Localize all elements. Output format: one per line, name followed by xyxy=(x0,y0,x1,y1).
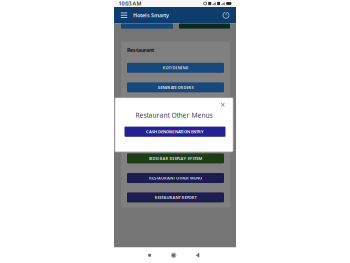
staticText: Restaurant Other Menus xyxy=(135,111,212,120)
button[interactable]: Back xyxy=(186,250,210,260)
staticText: (BDS) BAR DISPLAY SYSTEM xyxy=(148,156,202,161)
button[interactable]: ROOM SERVICE xyxy=(127,102,224,112)
staticText: CASH DENOMINATION ENTRY xyxy=(146,129,204,134)
staticText: 10:03 AM xyxy=(118,0,141,7)
button[interactable]: Open navigation menu xyxy=(117,8,131,22)
staticText: Restaurant xyxy=(127,46,154,54)
staticText: Hotels Smarty xyxy=(133,12,169,19)
button[interactable]: RESTAURANT OTHER MENU xyxy=(127,173,224,183)
staticText: RESTAURANT REPORT xyxy=(154,195,196,200)
button[interactable]: TABLE RESERVATION xyxy=(127,122,224,132)
staticText: GENERATE ORDERS xyxy=(157,85,193,90)
button[interactable]: (BDS) BAR DISPLAY SYSTEM xyxy=(127,153,224,163)
button[interactable]: GENERATE ORDERS xyxy=(127,82,224,92)
button[interactable]: KOT/DINING xyxy=(127,63,224,73)
button[interactable]: Close xyxy=(218,100,228,110)
button[interactable]: Log out xyxy=(219,8,233,22)
staticText: TABLE RESERVATION xyxy=(156,124,195,129)
button[interactable]: Home xyxy=(162,250,186,260)
button[interactable]: CASH DENOMINATION ENTRY xyxy=(124,127,225,137)
staticText: RESTAURANT OTHER MENU xyxy=(149,175,202,181)
button[interactable]: RESTAURANT REPORT xyxy=(127,192,224,202)
button[interactable]: Recent apps xyxy=(138,250,162,260)
staticText: KOT/DINING xyxy=(162,65,188,70)
